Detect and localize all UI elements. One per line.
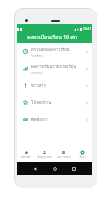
button[interactable]: Home (53, 167, 57, 171)
staticText: ติดต่อเรา (31, 116, 48, 123)
staticText: รายงาน (31, 70, 43, 75)
staticText: โปรดปราน (31, 99, 51, 106)
staticText: หน้าหลัก (21, 155, 31, 159)
button[interactable]: โปรดปราน (17, 94, 92, 111)
button[interactable]: ผลการเรียน (54, 148, 73, 162)
staticText: 10:41 (83, 27, 92, 31)
staticText: ข้อมูลส่วนตัว (37, 155, 52, 159)
button[interactable]: Recent apps (72, 167, 76, 171)
button[interactable]: ข่าวสาร (17, 77, 92, 94)
button[interactable]: ผลการเรียนรายภาคเรียน (17, 60, 92, 77)
staticText: รายวิชา (31, 53, 43, 58)
staticText: ผลการเรียน (57, 155, 71, 159)
button[interactable]: ติดต่อเรา (17, 111, 92, 128)
staticText: ผลการเรียนรายภาคเรียน (31, 63, 77, 70)
staticText: ลงทะเบียนเรียน 10 ศก (27, 33, 77, 41)
button[interactable]: ตั้งค่า (73, 148, 92, 162)
staticText: ข่าวสาร (31, 82, 46, 89)
staticText: ตรวจสอบผลการเรียน (31, 46, 70, 53)
button[interactable]: Back (33, 167, 37, 171)
staticText: ตั้งค่า (79, 155, 86, 159)
button[interactable]: หน้าหลัก (17, 148, 35, 162)
button[interactable]: ข้อมูลส่วนตัว (35, 148, 54, 162)
button[interactable]: ตรวจสอบผลการเรียน (17, 43, 92, 60)
